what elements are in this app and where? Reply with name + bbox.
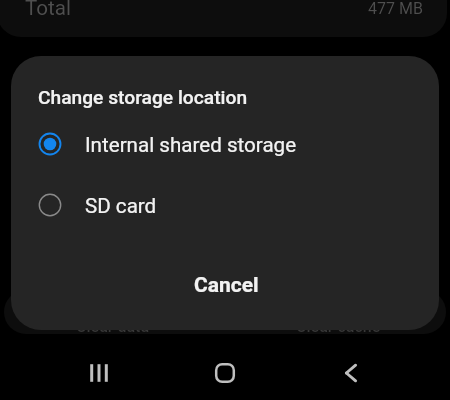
button[interactable]: Internal shared storage (11, 113, 439, 174)
staticText: 477 MB (368, 0, 423, 18)
button[interactable]: SD card (11, 174, 439, 235)
staticText: Internal shared storage (85, 133, 297, 157)
staticText: SD card (85, 194, 157, 218)
staticText: Cancel (194, 273, 259, 298)
button[interactable]: Recent apps (71, 353, 127, 393)
staticText: Change storage location (38, 86, 248, 109)
button[interactable]: Back (323, 353, 379, 393)
button[interactable]: Home (197, 353, 253, 393)
staticText: Total (25, 0, 71, 20)
button[interactable]: Cancel (170, 262, 283, 309)
staticText: Clear cache (296, 317, 381, 334)
staticText: Clear data (76, 317, 150, 334)
